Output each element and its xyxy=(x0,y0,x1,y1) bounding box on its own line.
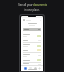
staticText: See all your xyxy=(18,3,33,7)
button[interactable] xyxy=(23,63,41,65)
staticText: documents xyxy=(33,3,47,7)
button[interactable]: Documents xyxy=(23,65,28,71)
button[interactable] xyxy=(23,53,41,58)
button[interactable]: Profile xyxy=(33,65,38,71)
button[interactable] xyxy=(23,58,41,62)
button[interactable]: List xyxy=(28,65,33,71)
button[interactable]: Add xyxy=(38,65,41,71)
button[interactable] xyxy=(23,28,41,31)
button[interactable] xyxy=(23,38,41,42)
button[interactable] xyxy=(23,48,41,52)
button[interactable] xyxy=(23,43,41,48)
button[interactable] xyxy=(23,33,41,38)
staticText: in one place. xyxy=(24,8,40,12)
